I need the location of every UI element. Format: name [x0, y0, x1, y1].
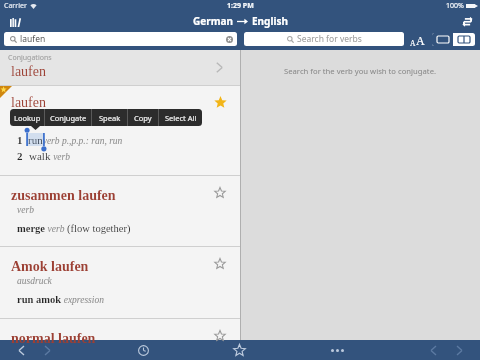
staticText: normal laufen: [11, 331, 96, 347]
button[interactable]: Next entry: [452, 343, 466, 357]
staticText: laufen: [11, 64, 46, 80]
staticText: Select All: [165, 113, 197, 123]
staticText: Lookup: [14, 113, 41, 123]
staticText: walk verb: [29, 150, 71, 162]
button[interactable]: Conjugate: [45, 109, 91, 126]
staticText: 1:29 PM: [227, 1, 254, 11]
staticText: merge verb (flow together): [17, 223, 131, 235]
staticText: laufen: [11, 95, 46, 111]
button[interactable]: Dictionaries: [10, 18, 21, 27]
button[interactable]: Favorites: [232, 343, 246, 357]
button[interactable]: normal laufen: [0, 319, 240, 340]
button[interactable]: Speak: [92, 109, 127, 126]
staticText: Amok laufen: [11, 259, 89, 275]
button[interactable]: Favorite: [214, 187, 226, 199]
button[interactable]: History: [136, 343, 150, 357]
button[interactable]: laufen: [0, 86, 240, 175]
button[interactable]: Favorite: [214, 258, 226, 270]
staticText: Conjugate: [50, 113, 87, 123]
staticText: zusammen laufen: [11, 188, 116, 204]
staticText: 2: [17, 150, 23, 162]
staticText: runverb p.,p.p.: ran, run: [28, 134, 123, 146]
button[interactable]: Clear search: [226, 36, 233, 43]
staticText: Conjugations: [8, 53, 52, 63]
button[interactable]: Back: [14, 343, 28, 357]
button[interactable]: Amok laufen: [0, 247, 240, 318]
staticText: 100%: [446, 1, 464, 11]
button[interactable]: More options: [326, 343, 348, 357]
staticText: run amok expression: [17, 294, 104, 306]
button[interactable]: Previous entry: [426, 343, 440, 357]
staticText: A: [410, 39, 416, 47]
staticText: Carrier: [4, 1, 27, 11]
staticText: Search for verbs: [297, 33, 362, 45]
button[interactable]: laufen: [4, 32, 237, 46]
button[interactable]: Search for verbs: [244, 32, 404, 46]
button[interactable]: Single pane: [432, 33, 453, 46]
button[interactable]: Split pane: [453, 33, 475, 46]
staticText: ausdruck: [17, 276, 52, 287]
staticText: Copy: [134, 113, 152, 123]
button[interactable]: Swap languages: [461, 15, 474, 28]
staticText: verb: [17, 205, 34, 216]
button[interactable]: Favorite: [214, 96, 227, 109]
button[interactable]: Conjugations: [0, 50, 240, 85]
staticText: laufen: [20, 33, 46, 45]
button[interactable]: Text size: [410, 33, 425, 47]
button[interactable]: Lookup: [10, 109, 44, 126]
staticText: Speak: [99, 113, 121, 123]
staticText: German: [193, 14, 233, 28]
button[interactable]: Favorite: [214, 330, 226, 342]
staticText: English: [252, 14, 288, 28]
button[interactable]: Select All: [159, 109, 202, 126]
staticText: Search for the verb you wish to conjugat…: [284, 66, 437, 76]
button[interactable]: Copy: [128, 109, 158, 126]
staticText: 1: [17, 134, 23, 146]
button[interactable]: Forward: [40, 343, 54, 357]
staticText: A: [416, 34, 425, 47]
button[interactable]: zusammen laufen: [0, 176, 240, 246]
